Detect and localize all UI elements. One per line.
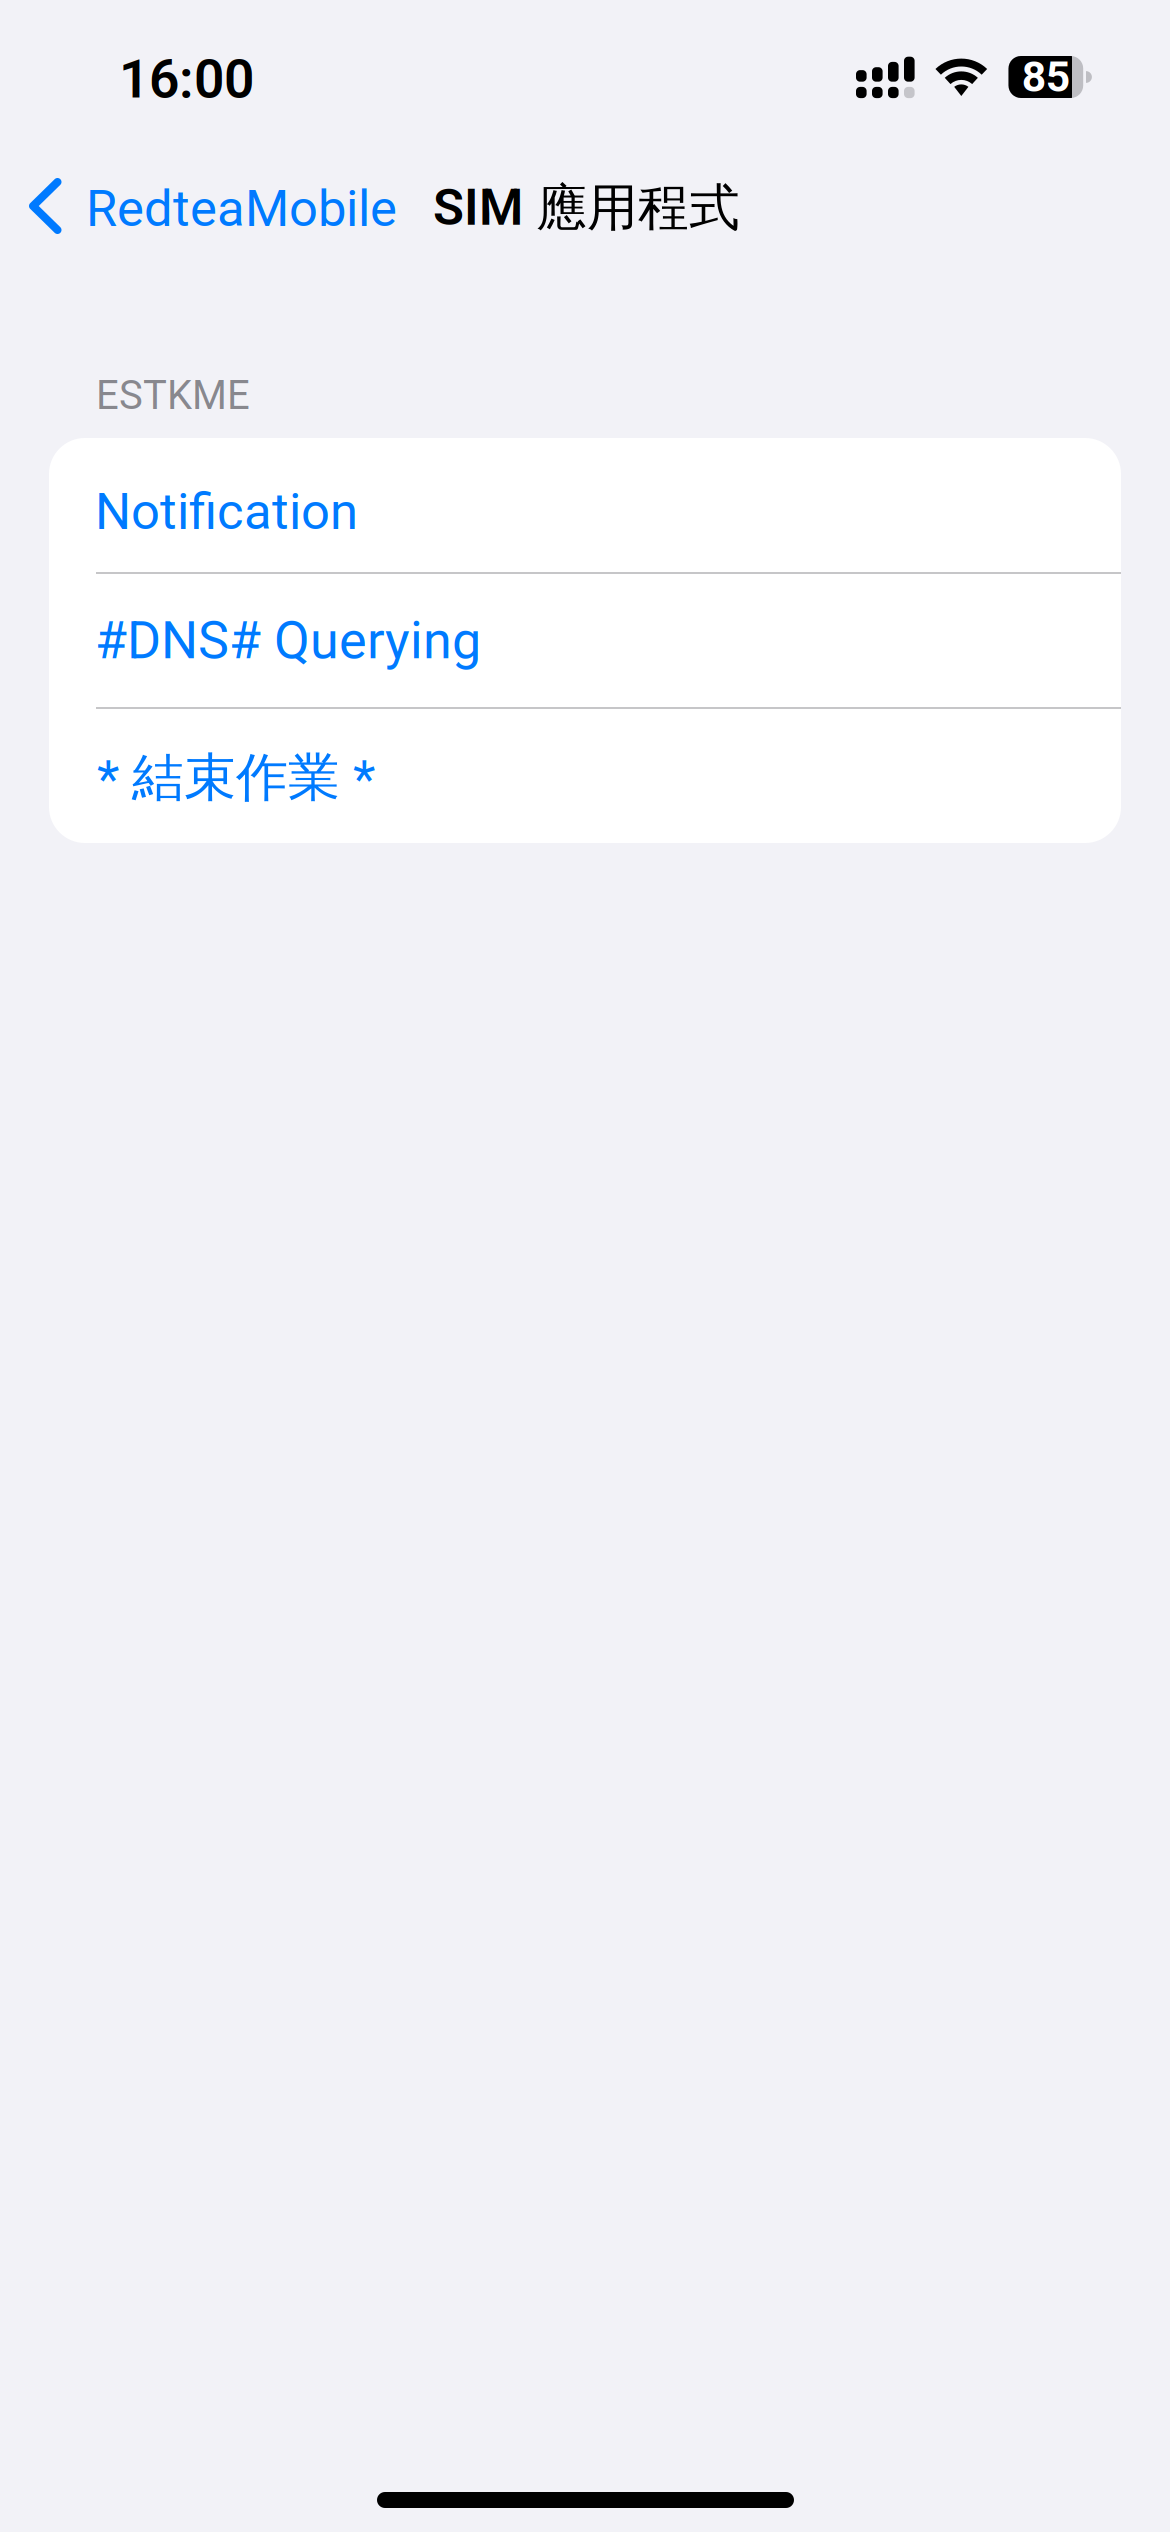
staticText: Notification (95, 482, 358, 541)
staticText: SIM 應用程式 (433, 176, 740, 240)
staticText: 16:00 (119, 48, 254, 110)
button[interactable]: #DNS# Querying (49, 573, 1121, 708)
button[interactable]: RedteaMobile (0, 147, 420, 265)
staticText: * 結束作業 * (97, 745, 375, 810)
button[interactable]: Notification (49, 438, 1121, 573)
staticText: ESTKME (96, 372, 250, 419)
staticText: 85 (1022, 52, 1070, 102)
button[interactable]: * 結束作業 * (49, 708, 1121, 843)
staticText: #DNS# Querying (95, 610, 481, 671)
staticText: RedteaMobile (86, 179, 397, 238)
